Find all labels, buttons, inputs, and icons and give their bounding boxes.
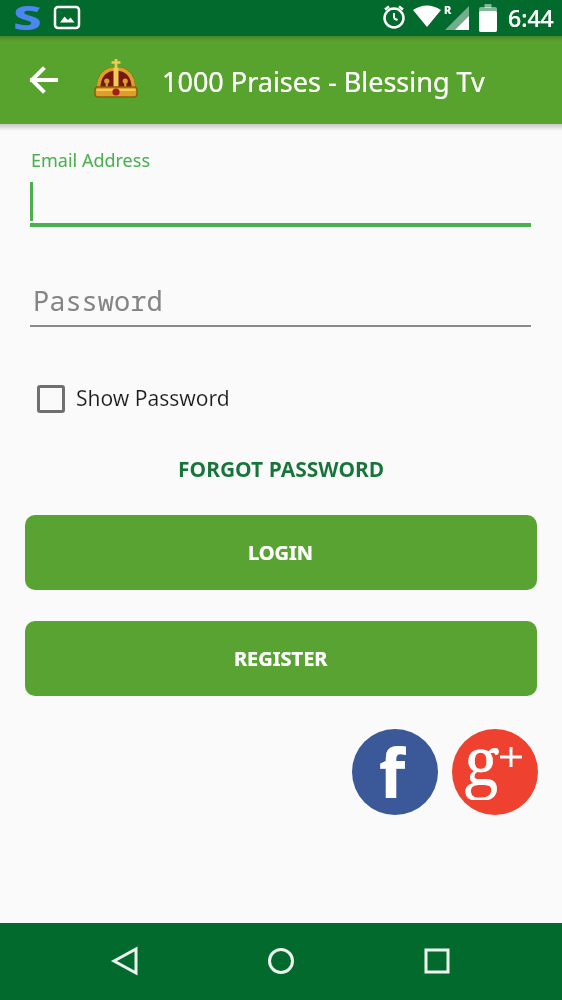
button[interactable]: REGISTER	[25, 621, 537, 696]
staticText: R	[444, 2, 452, 17]
button[interactable]	[413, 937, 461, 985]
button[interactable]	[257, 937, 305, 985]
button[interactable]: FORGOT PASSWORD	[178, 455, 385, 484]
button[interactable]: Password	[30, 282, 531, 327]
button[interactable]: LOGIN	[25, 515, 537, 590]
staticText: 1000 Praises - Blessing Tv	[162, 63, 485, 100]
staticText: LOGIN	[248, 539, 314, 566]
button[interactable]	[20, 56, 68, 104]
staticText: S	[13, 0, 43, 30]
staticText: REGISTER	[234, 645, 328, 672]
staticText: f	[379, 729, 406, 811]
button[interactable]	[30, 176, 531, 227]
button[interactable]: g	[452, 729, 538, 815]
button[interactable]: Show Password	[37, 384, 230, 413]
button[interactable]	[101, 937, 149, 985]
staticText: Email Address	[31, 148, 151, 173]
button[interactable]: f	[352, 729, 438, 815]
staticText: g	[464, 729, 500, 800]
staticText: 6:44	[508, 2, 554, 33]
staticText: Show Password	[76, 384, 230, 413]
staticText: Password	[33, 282, 163, 319]
